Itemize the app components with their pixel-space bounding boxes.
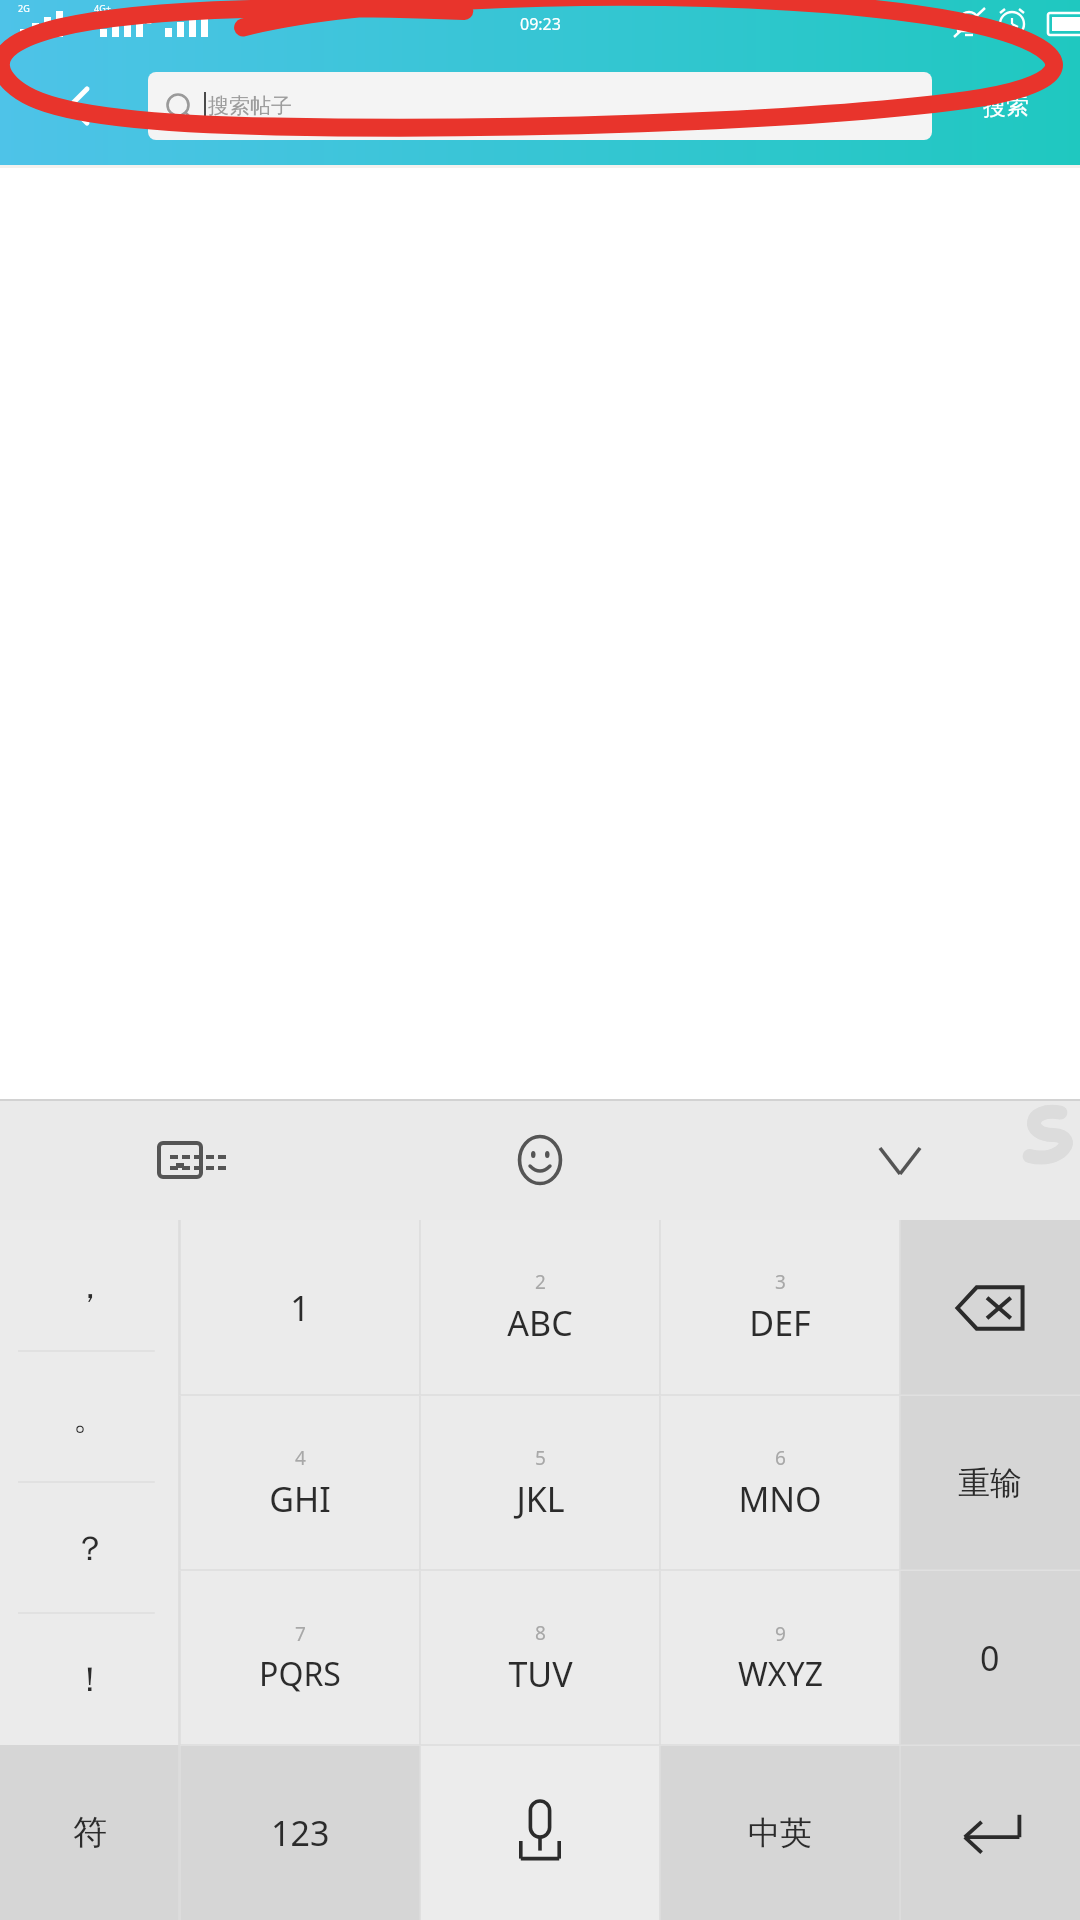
button[interactable]: ？ bbox=[0, 1483, 180, 1614]
button[interactable]: Enter bbox=[900, 1746, 1080, 1920]
button[interactable]: Back bbox=[0, 47, 148, 165]
staticText: WXYZ bbox=[738, 1652, 823, 1696]
button[interactable]: 中英 bbox=[660, 1746, 900, 1920]
button[interactable]: ， bbox=[0, 1220, 180, 1352]
staticText: GHI bbox=[269, 1476, 331, 1522]
staticText: MNO bbox=[738, 1476, 822, 1522]
staticText: ？ bbox=[73, 1527, 107, 1570]
button[interactable]: ！ bbox=[0, 1614, 180, 1745]
button[interactable]: 4 bbox=[180, 1396, 420, 1570]
button[interactable]: 搜索帖子 bbox=[148, 72, 932, 140]
staticText: JKL bbox=[516, 1476, 565, 1522]
button[interactable]: Keyboard layout bbox=[0, 1100, 360, 1220]
staticText: 2G bbox=[140, 14, 152, 26]
staticText: 搜索帖子 bbox=[208, 93, 292, 119]
button[interactable]: 9 bbox=[660, 1571, 900, 1745]
staticText: 2G bbox=[18, 2, 30, 14]
staticText: 4G+ bbox=[94, 2, 111, 14]
button[interactable]: 3 bbox=[660, 1220, 900, 1395]
staticText: 1 bbox=[290, 1285, 310, 1331]
staticText: 8 bbox=[535, 1620, 546, 1646]
button[interactable]: 重输 bbox=[900, 1396, 1080, 1570]
button[interactable]: 0 bbox=[900, 1571, 1080, 1745]
button[interactable]: 1 bbox=[180, 1220, 420, 1395]
staticText: 0 bbox=[980, 1635, 1000, 1681]
button[interactable]: Hide keyboard bbox=[720, 1100, 1080, 1220]
staticText: 2 bbox=[535, 1269, 546, 1295]
staticText: 3 bbox=[775, 1269, 786, 1295]
staticText: TUV bbox=[508, 1651, 573, 1697]
button[interactable]: 搜索 bbox=[932, 47, 1080, 165]
staticText: 9 bbox=[775, 1621, 786, 1647]
staticText: 6 bbox=[775, 1445, 786, 1471]
staticText: 中英 bbox=[748, 1813, 812, 1853]
staticText: 09:23 bbox=[520, 13, 561, 35]
button[interactable]: 。 bbox=[0, 1352, 180, 1483]
button[interactable]: 7 bbox=[180, 1571, 420, 1745]
button[interactable]: 符 bbox=[0, 1745, 180, 1920]
button[interactable]: 123 bbox=[180, 1746, 420, 1920]
staticText: DEF bbox=[749, 1300, 811, 1346]
button[interactable]: 2 bbox=[420, 1220, 660, 1395]
button[interactable]: 5 bbox=[420, 1396, 660, 1570]
staticText: 。 bbox=[73, 1396, 107, 1439]
staticText: ！ bbox=[73, 1658, 107, 1701]
button[interactable]: Voice input bbox=[420, 1746, 660, 1920]
staticText: 搜索 bbox=[983, 92, 1029, 121]
staticText: ABC bbox=[507, 1300, 573, 1346]
staticText: 5 bbox=[535, 1445, 546, 1471]
staticText: PQRS bbox=[259, 1652, 341, 1696]
staticText: 4 bbox=[295, 1445, 306, 1471]
button[interactable]: 6 bbox=[660, 1396, 900, 1570]
staticText: 7 bbox=[295, 1621, 306, 1647]
staticText: 符 bbox=[73, 1811, 107, 1854]
button[interactable]: Emoji bbox=[360, 1100, 720, 1220]
button[interactable]: Delete bbox=[900, 1220, 1080, 1395]
button[interactable]: 8 bbox=[420, 1571, 660, 1745]
staticText: ， bbox=[73, 1265, 107, 1308]
staticText: 123 bbox=[271, 1810, 330, 1856]
staticText: 重输 bbox=[958, 1463, 1022, 1503]
